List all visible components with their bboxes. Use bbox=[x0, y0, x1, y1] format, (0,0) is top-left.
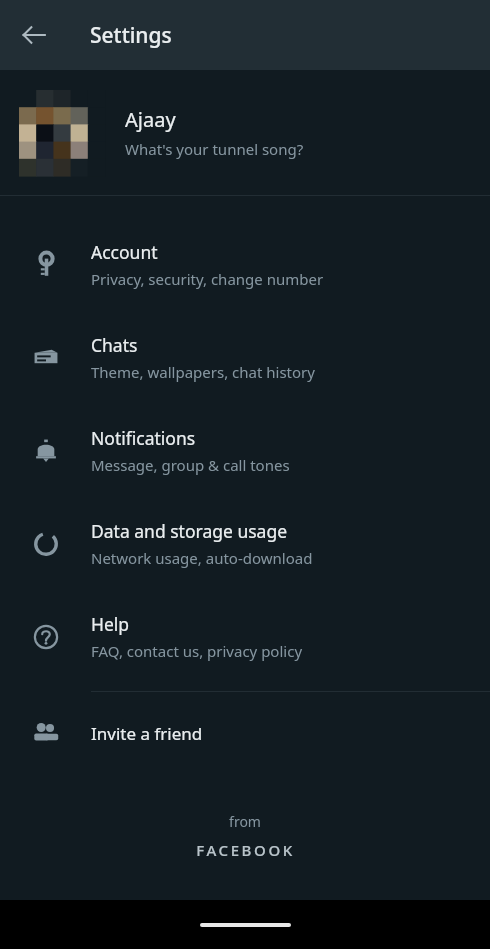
staticText: Message, group & call tones bbox=[91, 455, 290, 475]
staticText: Theme, wallpapers, chat history bbox=[91, 362, 315, 382]
button[interactable]: Data and storage usage bbox=[0, 497, 490, 590]
staticText: Privacy, security, change number bbox=[91, 269, 324, 289]
button[interactable]: Invite a friend bbox=[0, 700, 490, 766]
staticText: Account bbox=[91, 240, 158, 264]
staticText: Help bbox=[91, 612, 130, 636]
button[interactable]: Back bbox=[10, 11, 58, 59]
button[interactable]: Ajaay bbox=[0, 70, 490, 195]
staticText: FAQ, contact us, privacy policy bbox=[91, 641, 303, 661]
staticText: Settings bbox=[90, 21, 172, 50]
staticText: What's your tunnel song? bbox=[125, 139, 304, 159]
button[interactable]: Chats bbox=[0, 311, 490, 404]
staticText: Chats bbox=[91, 333, 138, 357]
button[interactable]: Help bbox=[0, 590, 490, 683]
staticText: Invite a friend bbox=[91, 722, 203, 745]
staticText: FACEBOOK bbox=[196, 840, 295, 860]
button[interactable]: Notifications bbox=[0, 404, 490, 497]
staticText: Data and storage usage bbox=[91, 519, 288, 543]
staticText: Notifications bbox=[91, 426, 196, 450]
button[interactable]: Account bbox=[0, 218, 490, 311]
staticText: Network usage, auto-download bbox=[91, 548, 313, 568]
staticText: from bbox=[229, 812, 261, 831]
staticText: Ajaay bbox=[125, 106, 176, 133]
